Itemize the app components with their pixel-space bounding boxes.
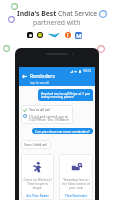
button[interactable]: Can you show me more reminders?	[32, 128, 93, 134]
button[interactable]: Yesterday fest on her Take control of yo…	[59, 154, 93, 200]
staticText: Plan Reminder	[65, 194, 88, 197]
staticText: Reminders	[30, 73, 55, 80]
staticText: You're all set!	[29, 107, 51, 112]
staticText: !	[67, 32, 69, 38]
staticText: Get Plan Ready	[26, 194, 49, 197]
staticText: I'll call and remind you at 5:00 PM on T…	[29, 114, 71, 122]
staticText: Sure. Hold on!	[24, 142, 48, 147]
staticText: Can you show me more reminders?	[35, 129, 90, 133]
button[interactable]: Remind me to call Priya at 1 pm today ev…	[38, 89, 93, 101]
staticText: 10:12	[83, 69, 92, 73]
staticText: Yesterday fest on her Take control of yo…	[61, 178, 91, 190]
staticText: Come on Workout! Time to get in shape.	[23, 178, 52, 190]
staticText: partnered with	[33, 18, 81, 27]
staticText: Remind me to call Priya at 1 pm today ev…	[41, 91, 90, 99]
staticText: tap to see all	[30, 81, 50, 85]
button[interactable]: Come on Workout! Time to get in shape.	[21, 154, 54, 200]
staticText: Chat Service	[58, 9, 98, 18]
button[interactable]: Back	[21, 73, 27, 79]
staticText: M	[76, 32, 82, 39]
staticText: India's Best	[17, 9, 58, 18]
